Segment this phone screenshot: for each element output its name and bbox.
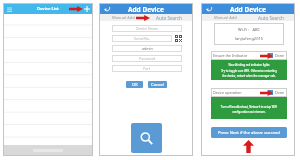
button[interactable] <box>4 97 92 109</box>
staticText: Done <box>275 53 285 58</box>
button[interactable] <box>4 121 92 133</box>
button[interactable]: Auto Search <box>146 14 192 21</box>
staticText: Wi-Fi : ABC <box>238 27 261 32</box>
button[interactable]: Back <box>100 4 113 14</box>
button[interactable]: Serial No. <box>112 35 172 42</box>
staticText: Password <box>139 56 156 61</box>
staticText: Auto Search <box>258 15 284 21</box>
button[interactable]: Device Name <box>112 25 182 32</box>
staticText: Cancel <box>151 82 165 88</box>
staticText: Done <box>275 90 285 95</box>
button[interactable]: Add device <box>83 5 91 13</box>
button[interactable] <box>4 85 92 97</box>
staticText: Device operation <box>213 90 242 95</box>
button[interactable]: OK <box>126 81 143 88</box>
button[interactable]: Menu <box>5 5 13 13</box>
staticText: Auto Search <box>156 15 182 21</box>
staticText: Manual Add <box>112 15 135 20</box>
button[interactable]: Port <box>112 65 182 72</box>
staticText: Add Device <box>128 5 164 14</box>
button[interactable] <box>4 37 92 49</box>
staticText: configuration as intercom. <box>214 110 284 114</box>
button[interactable]: Back <box>202 4 215 14</box>
staticText: admin <box>142 46 153 51</box>
staticText: lanjiufeng2015 <box>235 36 263 41</box>
staticText: Press Next if the above succeed <box>218 130 280 136</box>
staticText: Add Device <box>230 5 266 14</box>
button[interactable]: Manual Add <box>202 14 248 21</box>
button[interactable]: Password <box>112 55 182 62</box>
staticText: Slow blinking red indicator lights <box>214 63 284 67</box>
button[interactable] <box>4 73 92 85</box>
button[interactable]: Scan QR code <box>175 35 182 42</box>
button[interactable]: Auto Search <box>248 14 294 21</box>
staticText: Serial No. <box>134 36 151 41</box>
staticText: Port <box>143 66 151 71</box>
staticText: Turn off troubleshoot, Network to setup … <box>214 105 284 109</box>
staticText: Ensure the Indicator <box>213 53 248 58</box>
button[interactable] <box>4 145 92 155</box>
button[interactable]: Manual Add <box>100 14 146 21</box>
button[interactable]: Search <box>131 123 162 153</box>
button[interactable]: admin <box>112 45 182 52</box>
staticText: Manual Add <box>214 15 237 20</box>
button[interactable]: Device operation <box>211 88 287 97</box>
button[interactable] <box>4 61 92 73</box>
staticText: the device, restart when the manager cab… <box>214 74 284 78</box>
button[interactable]: Wi-Fi : ABC <box>214 23 284 45</box>
staticText: Try to toggle sure WiFi. Otherwise resta… <box>214 69 284 73</box>
staticText: Device Name <box>136 26 159 31</box>
button[interactable]: Ensure the Indicator <box>211 51 287 60</box>
button[interactable]: Cancel <box>148 81 167 88</box>
button[interactable]: Press Next if the above succeed <box>211 127 287 138</box>
staticText: OK <box>132 82 138 88</box>
staticText: Device List <box>37 6 59 12</box>
